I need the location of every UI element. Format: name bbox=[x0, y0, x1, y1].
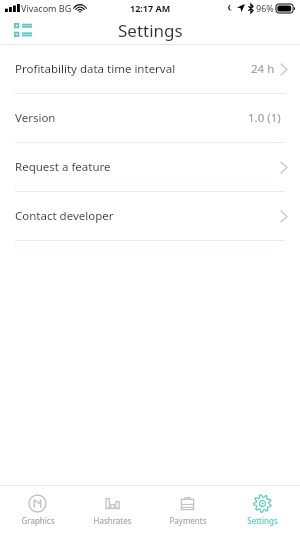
staticText: 12:17 AM bbox=[130, 2, 171, 14]
button[interactable]: Graphics bbox=[0, 486, 75, 533]
button[interactable]: Contact developer bbox=[0, 192, 300, 240]
staticText: Contact developer bbox=[15, 208, 114, 224]
button[interactable]: Hashrates bbox=[75, 486, 150, 533]
button[interactable]: Payments bbox=[150, 486, 225, 533]
staticText: Hashrates bbox=[93, 515, 132, 526]
staticText: Request a feature bbox=[15, 159, 111, 175]
button[interactable]: Settings bbox=[225, 486, 300, 533]
staticText: 24 h bbox=[251, 61, 275, 77]
staticText: Profitability data time interval bbox=[15, 61, 176, 77]
staticText: Graphics bbox=[21, 515, 55, 526]
button[interactable]: Version bbox=[0, 94, 300, 142]
button[interactable]: Request a feature bbox=[0, 143, 300, 191]
staticText: 1.0 (1) bbox=[248, 110, 281, 126]
staticText: Vivacom BG bbox=[21, 2, 72, 14]
staticText: Payments bbox=[169, 515, 207, 526]
button[interactable]: List bbox=[8, 16, 38, 44]
staticText: Version bbox=[15, 110, 56, 126]
button[interactable]: Profitability data time interval bbox=[0, 45, 300, 93]
staticText: 96% bbox=[256, 2, 274, 14]
staticText: Settings bbox=[118, 19, 183, 42]
staticText: Settings bbox=[247, 515, 278, 526]
